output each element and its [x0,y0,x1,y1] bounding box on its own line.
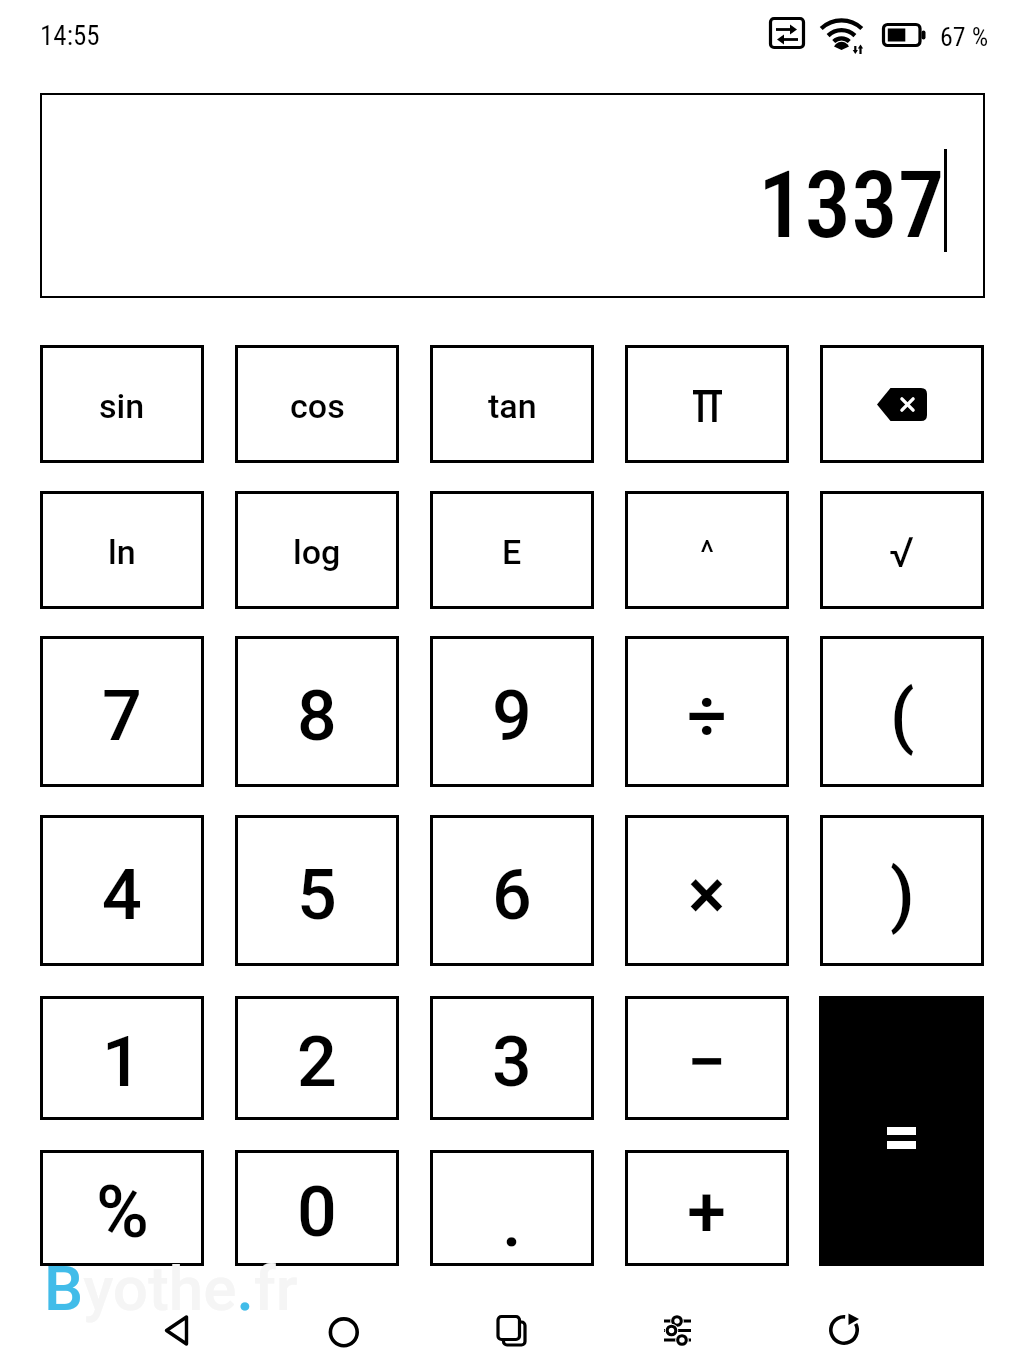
button[interactable] [484,1303,540,1359]
staticText: 14:55 [40,20,100,52]
button[interactable]: 3 [430,996,594,1120]
button[interactable] [316,1303,372,1359]
button[interactable]: 9 [430,636,594,787]
button[interactable] [653,1303,709,1359]
button[interactable]: 4 [40,815,204,966]
button[interactable]: 2 [235,996,399,1120]
button[interactable]: 6 [430,815,594,966]
staticText: . [502,1181,522,1263]
button[interactable]: sin [40,345,204,463]
button[interactable]: ( [820,636,984,787]
staticText: 9 [492,675,532,757]
button[interactable]: E [430,491,594,609]
staticText: ^ [700,532,715,572]
staticText: + [687,1171,727,1253]
button[interactable]: × [625,815,789,966]
staticText: ÷ [687,675,727,757]
button[interactable] [148,1303,204,1359]
staticText: 7 [102,675,142,757]
staticText: 2 [297,1021,337,1103]
button[interactable] [625,345,789,463]
button[interactable]: + [625,1150,789,1266]
staticText: × [688,854,726,936]
button[interactable]: ) [820,815,984,966]
staticText: − [687,1021,727,1103]
button[interactable] [820,345,984,463]
button[interactable]: 0 [235,1150,399,1266]
button[interactable]: ^ [625,491,789,609]
staticText: 1337 [758,151,945,260]
button[interactable]: 8 [235,636,399,787]
staticText: 1 [102,1021,142,1103]
staticText: 6 [492,854,532,936]
staticText: 5 [297,854,337,936]
staticText: 3 [492,1021,532,1103]
button[interactable]: − [625,996,789,1120]
button[interactable] [819,996,984,1266]
staticText: 67 % [940,22,989,52]
staticText: √ [889,528,915,577]
button[interactable]: log [235,491,399,609]
button[interactable]: √ [820,491,984,609]
button[interactable]: ln [40,491,204,609]
staticText: tan [488,386,537,426]
staticText: sin [99,386,145,426]
staticText: ln [108,532,136,572]
staticText: Byothe.fr [44,1252,298,1325]
button[interactable]: 1 [40,996,204,1120]
staticText: ( [890,675,915,757]
staticText: cos [290,386,345,426]
staticText: E [502,532,522,572]
button[interactable]: 5 [235,815,399,966]
staticText: 8 [297,675,337,757]
staticText: 0 [297,1171,337,1253]
button[interactable] [817,1303,873,1359]
staticText: ) [890,854,915,936]
button[interactable]: . [430,1150,594,1266]
button[interactable]: tan [430,345,594,463]
staticText: % [96,1170,149,1254]
button[interactable]: % [40,1150,204,1266]
staticText: log [293,532,341,572]
button[interactable]: ÷ [625,636,789,787]
staticText: 4 [102,854,142,936]
button[interactable]: 7 [40,636,204,787]
button[interactable] [40,93,985,298]
button[interactable]: cos [235,345,399,463]
